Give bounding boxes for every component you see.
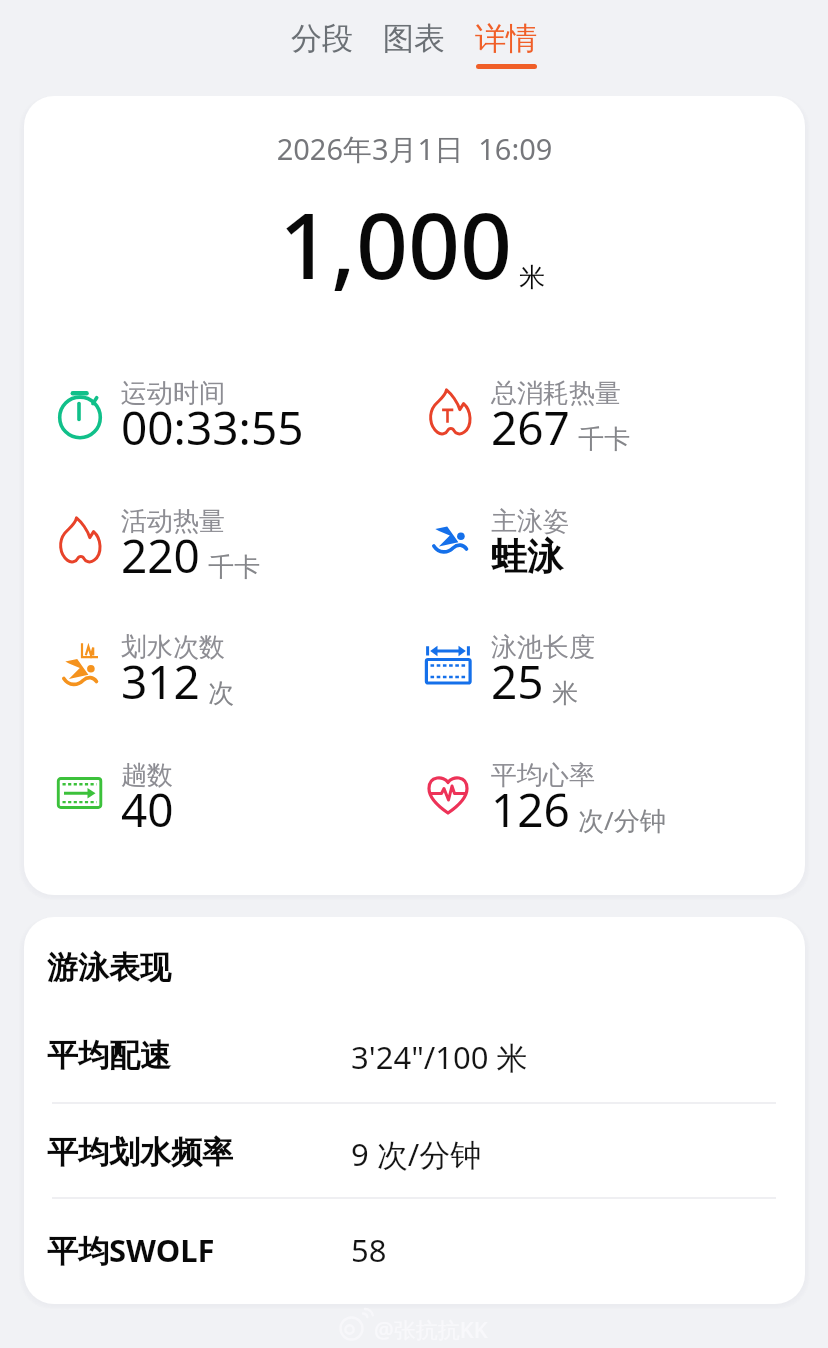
- button[interactable]: 平均划水频率: [24, 1101, 805, 1197]
- staticText: 千卡: [578, 423, 630, 456]
- staticText: 总消耗热量: [491, 377, 621, 410]
- staticText: 活动热量: [121, 505, 225, 538]
- staticText: 2026年3月1日 16:09: [24, 129, 805, 169]
- staticText: 次/分钟: [578, 802, 666, 838]
- button[interactable]: 详情: [465, 0, 547, 97]
- staticText: 00:33:55: [121, 396, 304, 459]
- staticText: 次: [208, 677, 234, 710]
- staticText: 267: [491, 396, 570, 459]
- button[interactable]: 划水次数: [57, 631, 234, 727]
- staticText: 划水次数: [121, 631, 225, 664]
- button[interactable]: 趟数: [57, 759, 174, 855]
- button[interactable]: 平均SWOLF: [24, 1197, 805, 1293]
- button[interactable]: 泳池长度: [427, 631, 595, 727]
- staticText: 平均配速: [47, 1036, 171, 1075]
- staticText: 1,000: [279, 182, 513, 306]
- button[interactable]: 分段: [281, 0, 363, 97]
- staticText: 9 次/分钟: [351, 1133, 482, 1175]
- staticText: 220: [121, 524, 200, 587]
- staticText: 平均SWOLF: [47, 1229, 215, 1271]
- staticText: 25: [491, 650, 544, 713]
- staticText: 平均划水频率: [47, 1133, 233, 1172]
- staticText: 126: [491, 778, 570, 841]
- staticText: 米: [552, 677, 578, 710]
- staticText: 平均心率: [491, 759, 595, 792]
- staticText: 312: [121, 650, 200, 713]
- staticText: 游泳表现: [47, 948, 171, 987]
- button[interactable]: 运动时间: [57, 377, 304, 473]
- button[interactable]: 总消耗热量: [427, 377, 630, 473]
- staticText: 蛙泳: [491, 534, 563, 579]
- staticText: 分段: [291, 19, 353, 58]
- staticText: 泳池长度: [491, 631, 595, 664]
- staticText: 趟数: [121, 759, 173, 792]
- staticText: 主泳姿: [491, 505, 569, 538]
- button[interactable]: 活动热量: [57, 505, 260, 601]
- staticText: 图表: [383, 19, 445, 58]
- button[interactable]: 主泳姿: [427, 505, 569, 583]
- staticText: 米: [519, 261, 545, 294]
- button[interactable]: 平均配速: [24, 1004, 805, 1100]
- staticText: 千卡: [208, 551, 260, 584]
- staticText: 58: [351, 1229, 387, 1271]
- staticText: 40: [121, 778, 174, 841]
- staticText: 运动时间: [121, 377, 225, 410]
- staticText: 详情: [475, 19, 537, 58]
- button[interactable]: 图表: [373, 0, 455, 97]
- staticText: 3'24"/100 米: [351, 1036, 528, 1078]
- button[interactable]: 平均心率: [427, 759, 666, 855]
